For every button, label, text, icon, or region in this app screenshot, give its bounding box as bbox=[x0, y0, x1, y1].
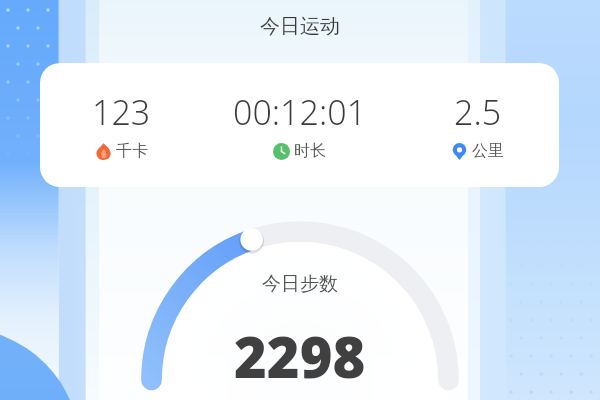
staticText: 2.5 bbox=[454, 89, 502, 135]
other: Duration bbox=[273, 143, 290, 160]
staticText: 123 bbox=[92, 89, 151, 135]
staticText: 今日步数 bbox=[262, 272, 338, 296]
staticText: 今日运动 bbox=[260, 14, 340, 39]
staticText: 00:12:01 bbox=[233, 89, 367, 135]
button[interactable]: 123 bbox=[40, 63, 203, 187]
button[interactable]: 00:12:01 bbox=[203, 63, 396, 187]
staticText: 千卡 bbox=[116, 141, 148, 161]
button[interactable]: 2.5 bbox=[396, 63, 559, 187]
staticText: 时长 bbox=[294, 141, 326, 161]
staticText: 公里 bbox=[472, 141, 504, 161]
staticText: 2298 bbox=[234, 318, 366, 394]
button[interactable]: 123 bbox=[40, 63, 559, 187]
other: Calories bbox=[95, 143, 112, 160]
other: Distance bbox=[451, 143, 468, 160]
